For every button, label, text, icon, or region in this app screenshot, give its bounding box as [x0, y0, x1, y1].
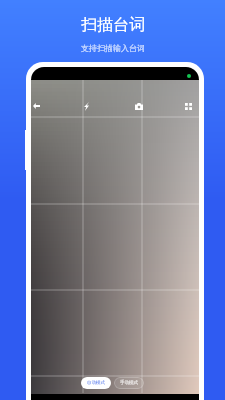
button[interactable]: Flash [78, 94, 95, 118]
staticText: 手动模式 [120, 380, 138, 386]
button[interactable]: Take photo [130, 94, 147, 118]
button[interactable]: Back [31, 94, 45, 118]
staticText: 扫描台词 [81, 15, 145, 35]
button[interactable]: 手动模式 [114, 377, 144, 389]
button[interactable]: 自动模式 [81, 377, 111, 389]
staticText: 支持扫描输入台词 [81, 43, 145, 53]
staticText: 自动模式 [87, 380, 105, 386]
button[interactable]: Grid [180, 94, 197, 118]
